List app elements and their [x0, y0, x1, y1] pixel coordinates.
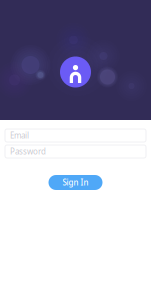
- staticText: Email: [10, 130, 29, 141]
- button[interactable]: Sign In: [48, 175, 102, 190]
- button[interactable]: Email: [5, 129, 146, 142]
- staticText: Sign In: [62, 177, 88, 188]
- button[interactable]: Password: [5, 145, 146, 158]
- staticText: Password: [10, 146, 46, 157]
